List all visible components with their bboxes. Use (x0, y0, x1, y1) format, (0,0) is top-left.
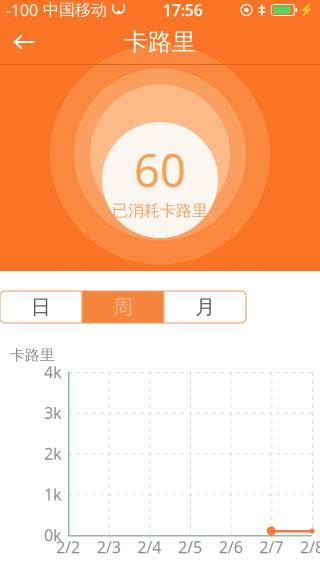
button[interactable]: 周 (82, 291, 164, 323)
staticText: 2/5 (178, 536, 202, 558)
staticText: 周 (113, 295, 133, 319)
staticText: 2/4 (137, 536, 161, 558)
staticText: 17:56 (163, 0, 203, 21)
staticText: 2/6 (219, 536, 243, 558)
staticText: 卡路里 (124, 27, 196, 57)
staticText: -100 (6, 0, 38, 21)
staticText: 2/2 (56, 536, 80, 558)
button[interactable]: Back (0, 20, 48, 64)
staticText: 2/7 (259, 536, 283, 558)
staticText: ⚡ (299, 3, 314, 17)
staticText: 月 (195, 295, 215, 319)
staticText: 卡路里 (10, 346, 55, 364)
button[interactable]: 月 (165, 291, 246, 323)
staticText: 2/3 (97, 536, 121, 558)
staticText: 3k (44, 402, 62, 423)
staticText: 已消耗卡路里 (112, 201, 208, 220)
button[interactable]: 日 (0, 291, 81, 323)
staticText: 0k (44, 524, 62, 546)
staticText: 2k (44, 443, 62, 464)
staticText: 1k (44, 484, 62, 505)
staticText: 日 (31, 295, 51, 319)
staticText: 中国移动 (38, 0, 107, 20)
staticText: 4k (44, 361, 62, 383)
staticText: 60 (134, 140, 186, 200)
staticText: 2/8 (300, 536, 320, 558)
